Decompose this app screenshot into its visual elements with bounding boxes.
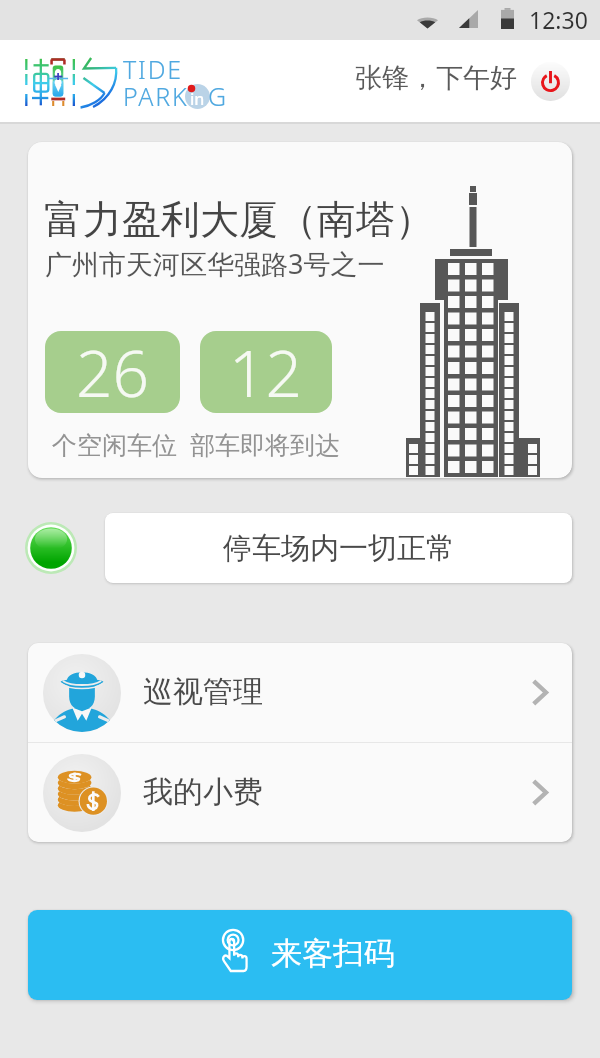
- staticText: 12: [229, 331, 303, 411]
- button[interactable]: 来客扫码: [28, 910, 572, 1000]
- staticText: 张锋，下午好: [355, 61, 517, 95]
- button[interactable]: My tips: [28, 743, 572, 842]
- staticText: 停车场内一切正常: [223, 530, 455, 567]
- staticText: TIDE: [123, 52, 183, 86]
- staticText: 12:30: [529, 4, 588, 35]
- staticText: 来客扫码: [271, 934, 395, 973]
- button[interactable]: 停车场内一切正常: [105, 513, 572, 583]
- staticText: 个空闲车位: [52, 430, 177, 461]
- staticText: 部车即将到达: [190, 430, 340, 461]
- button[interactable]: Power off: [531, 62, 570, 101]
- button[interactable]: Patrol management: [28, 643, 572, 742]
- staticText: G: [208, 79, 228, 113]
- staticText: 我的小费: [143, 773, 263, 811]
- staticText: 巡视管理: [143, 673, 263, 711]
- staticText: 广州市天河区华强路3号之一: [45, 245, 385, 282]
- staticText: 富力盈利大厦（南塔）: [44, 195, 434, 244]
- staticText: PARK: [123, 79, 189, 113]
- staticText: 26: [76, 331, 150, 411]
- staticText: in: [190, 88, 205, 110]
